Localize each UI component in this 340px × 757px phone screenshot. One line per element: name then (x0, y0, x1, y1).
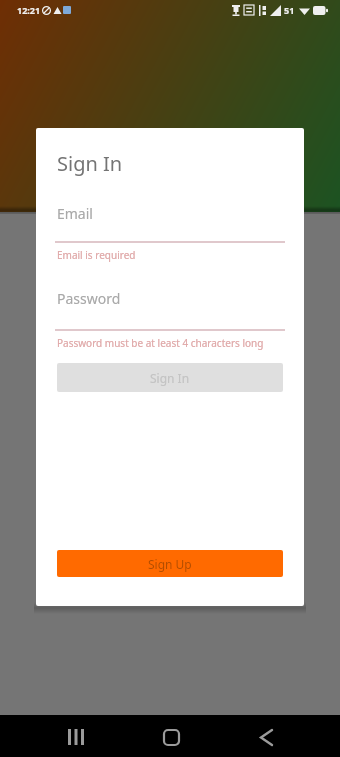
button[interactable]: Sign Up (57, 550, 283, 577)
button[interactable]: Back (242, 716, 290, 757)
staticText: 12:21 (17, 4, 41, 16)
staticText: Sign Up (148, 556, 192, 572)
staticText: Sign In (57, 150, 123, 177)
button[interactable]: Home (147, 716, 195, 757)
staticText: Password must be at least 4 characters l… (57, 336, 264, 350)
staticText: 51 (284, 4, 295, 16)
button[interactable]: Sign In (57, 363, 283, 392)
button[interactable]: Recent apps (52, 716, 100, 757)
staticText: Password (57, 289, 121, 308)
staticText: Email (57, 204, 93, 223)
staticText: Sign In (150, 370, 190, 386)
staticText: Email is required (57, 248, 136, 262)
